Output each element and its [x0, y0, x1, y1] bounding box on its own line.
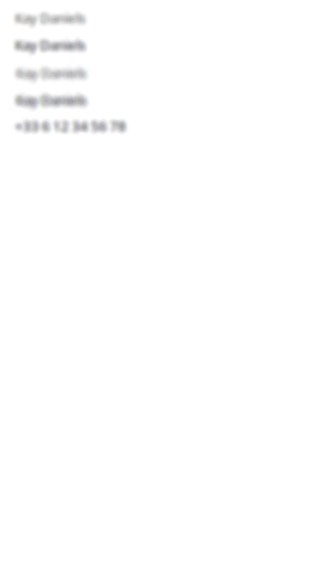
staticText: Kay Daniels	[15, 38, 85, 56]
staticText: Kay Daniels	[15, 9, 85, 27]
staticText: Kay Daniels	[14, 60, 84, 78]
staticText: Kay Daniels	[15, 10, 85, 28]
staticText: Kay Daniels	[15, 66, 85, 84]
staticText: Kay Daniels	[15, 64, 85, 82]
staticText: Kay Daniels	[13, 65, 83, 83]
staticText: Kay Daniels	[21, 65, 91, 83]
staticText: +33 6 12 34 56 78	[16, 116, 127, 134]
staticText: Kay Daniels	[20, 66, 90, 84]
staticText: +33 6 12 34 56 78	[18, 114, 129, 132]
staticText: Kay Daniels	[17, 90, 87, 108]
staticText: Kay Daniels	[17, 64, 87, 82]
staticText: Kay Daniels	[16, 5, 86, 23]
staticText: +33 6 12 34 56 78	[16, 120, 127, 138]
staticText: +33 6 12 34 56 78	[16, 113, 127, 131]
staticText: +33 6 12 34 56 78	[15, 120, 126, 138]
staticText: +33 6 12 34 56 78	[18, 115, 129, 133]
staticText: Kay Daniels	[18, 94, 88, 112]
staticText: +33 6 12 34 56 78	[14, 118, 125, 136]
staticText: Kay Daniels	[17, 39, 87, 57]
staticText: Kay Daniels	[19, 93, 89, 111]
staticText: Kay Daniels	[14, 34, 84, 52]
staticText: Kay Daniels	[11, 38, 81, 56]
staticText: Kay Daniels	[13, 11, 83, 29]
staticText: Kay Daniels	[14, 36, 84, 54]
staticText: Kay Daniels	[14, 10, 84, 28]
staticText: Kay Daniels	[13, 94, 83, 112]
staticText: +33 6 12 34 56 78	[19, 118, 130, 136]
staticText: +33 6 12 34 56 78	[19, 117, 130, 135]
staticText: Kay Daniels	[20, 67, 90, 85]
staticText: Kay Daniels	[14, 9, 84, 27]
staticText: Kay Daniels	[16, 86, 86, 104]
staticText: Kay Daniels	[11, 62, 81, 80]
staticText: Kay Daniels	[14, 40, 84, 58]
staticText: Kay Daniels	[21, 93, 91, 111]
staticText: +33 6 12 34 56 78	[11, 115, 122, 133]
staticText: Kay Daniels	[17, 59, 87, 77]
staticText: Kay Daniels	[13, 88, 83, 106]
staticText: +33 6 12 34 56 78	[17, 115, 128, 133]
staticText: Kay Daniels	[17, 36, 87, 54]
staticText: Kay Daniels	[20, 89, 90, 107]
staticText: Kay Daniels	[14, 94, 84, 112]
staticText: Kay Daniels	[16, 88, 86, 106]
staticText: Kay Daniels	[19, 94, 89, 112]
staticText: Kay Daniels	[13, 87, 83, 105]
staticText: Kay Daniels	[18, 91, 88, 109]
staticText: Kay Daniels	[13, 32, 83, 50]
staticText: Kay Daniels	[15, 59, 85, 77]
staticText: Kay Daniels	[12, 36, 82, 54]
staticText: Kay Daniels	[19, 62, 89, 80]
staticText: Kay Daniels	[21, 92, 91, 110]
staticText: +33 6 12 34 56 78	[13, 120, 124, 138]
staticText: Kay Daniels	[15, 12, 85, 30]
staticText: Kay Daniels	[18, 92, 88, 110]
staticText: Kay Daniels	[18, 69, 88, 87]
staticText: Kay Daniels	[14, 93, 84, 111]
staticText: Kay Daniels	[12, 63, 82, 81]
staticText: Kay Daniels	[13, 60, 83, 78]
staticText: Kay Daniels	[14, 63, 84, 81]
staticText: +33 6 12 34 56 78	[18, 117, 129, 135]
staticText: +33 6 12 34 56 78	[13, 116, 124, 134]
staticText: +33 6 12 34 56 78	[14, 116, 125, 134]
staticText: Kay Daniels	[20, 88, 90, 106]
staticText: Kay Daniels	[12, 11, 82, 29]
staticText: Kay Daniels	[14, 89, 84, 107]
staticText: +33 6 12 34 56 78	[11, 119, 122, 137]
staticText: +33 6 12 34 56 78	[16, 115, 127, 133]
staticText: Kay Daniels	[15, 32, 85, 50]
staticText: Kay Daniels	[12, 61, 82, 79]
staticText: Kay Daniels	[17, 68, 87, 86]
staticText: Kay Daniels	[15, 65, 85, 83]
staticText: Kay Daniels	[15, 87, 85, 105]
staticText: Kay Daniels	[19, 37, 89, 55]
staticText: Kay Daniels	[13, 33, 83, 51]
staticText: Kay Daniels	[14, 38, 84, 56]
staticText: Kay Daniels	[19, 64, 89, 82]
staticText: Kay Daniels	[14, 95, 84, 113]
staticText: Kay Daniels	[14, 35, 84, 53]
staticText: Kay Daniels	[16, 10, 86, 28]
staticText: Kay Daniels	[14, 59, 84, 77]
staticText: Kay Daniels	[18, 39, 88, 57]
staticText: Kay Daniels	[16, 12, 86, 30]
staticText: Kay Daniels	[14, 86, 84, 104]
staticText: Kay Daniels	[13, 90, 83, 108]
staticText: +33 6 12 34 56 78	[12, 114, 123, 132]
staticText: Kay Daniels	[11, 89, 81, 107]
staticText: Kay Daniels	[17, 94, 87, 112]
staticText: Kay Daniels	[11, 91, 81, 109]
staticText: Kay Daniels	[12, 64, 82, 82]
staticText: Kay Daniels	[15, 36, 85, 54]
staticText: Kay Daniels	[15, 96, 85, 114]
staticText: +33 6 12 34 56 78	[16, 118, 127, 136]
staticText: Kay Daniels	[17, 33, 87, 51]
staticText: Kay Daniels	[14, 62, 84, 80]
staticText: Kay Daniels	[18, 90, 88, 108]
staticText: Kay Daniels	[17, 65, 87, 83]
staticText: Kay Daniels	[18, 64, 88, 82]
staticText: +33 6 12 34 56 78	[12, 120, 123, 138]
staticText: Kay Daniels	[18, 96, 88, 114]
